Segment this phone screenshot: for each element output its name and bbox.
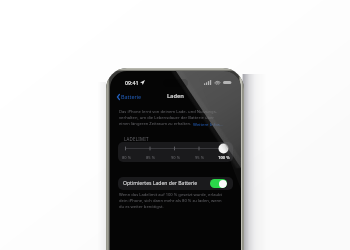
button[interactable]: Weitere Infos... — [193, 121, 224, 127]
other: Optimiertes Laden der Batterie Schalter — [210, 179, 227, 188]
staticText: Laden — [167, 92, 184, 100]
staticText: Wenn das Ladelimit auf 100 % gesetzt wur… — [119, 192, 223, 198]
staticText: 90 % — [171, 155, 180, 160]
button[interactable]: Batterie — [115, 91, 144, 102]
staticText: du es weiter benötigst. — [119, 204, 164, 210]
staticText: verhalten, um die Lebensdauer der Batter… — [119, 115, 215, 121]
staticText: dein iPhone, sich dann mehr als 80 % zu … — [119, 198, 222, 204]
staticText: einen längeren Zeitraum zu erhalten. — [119, 121, 193, 127]
staticText: 09:41 — [125, 79, 139, 86]
staticText: 100 % — [218, 155, 230, 160]
staticText: LADELIMIT — [124, 136, 149, 142]
staticText: 85 % — [146, 155, 155, 160]
staticText: 80 % — [122, 155, 131, 160]
staticText: Batterie — [121, 93, 142, 100]
button[interactable]: Optimiertes Laden der Batterie — [118, 177, 233, 190]
staticText: Das iPhone lernt von deinem Lade- und Nu… — [119, 109, 217, 115]
staticText: Optimiertes Laden der Batterie — [123, 180, 198, 187]
staticText: 95 % — [195, 155, 204, 160]
